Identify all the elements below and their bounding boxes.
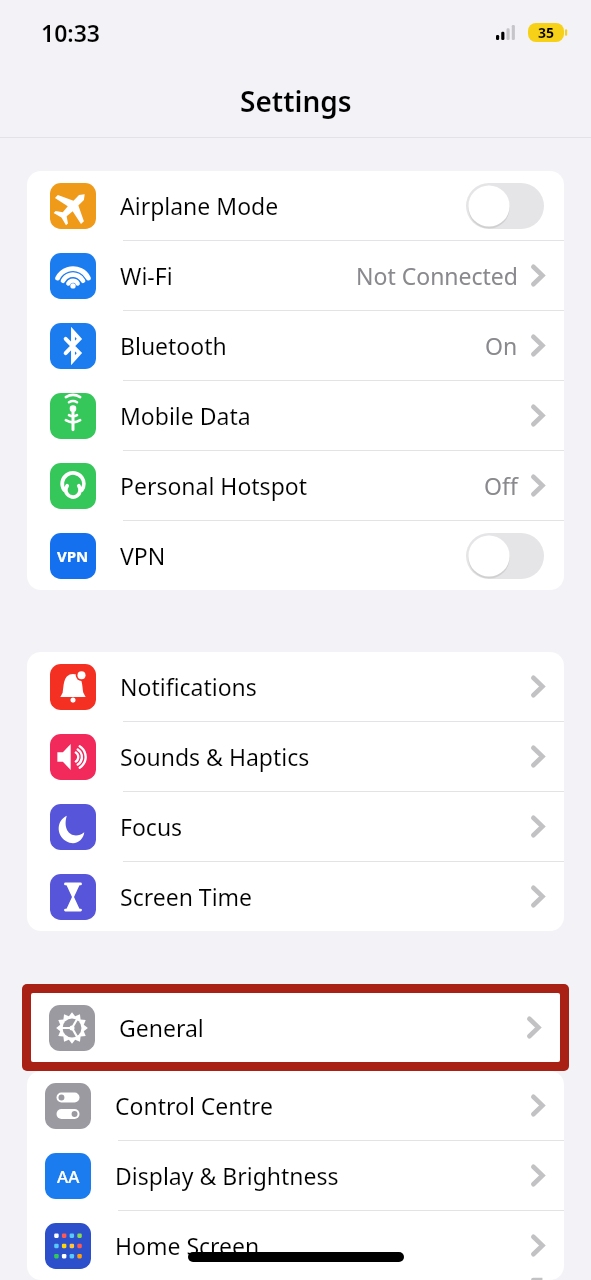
button[interactable]: Airplane Mode	[27, 171, 564, 240]
staticText: On	[485, 330, 518, 361]
staticText: Control Centre	[115, 1090, 531, 1121]
button[interactable]: VPN	[27, 521, 564, 590]
staticText: Mobile Data	[120, 400, 531, 431]
staticText: Display & Brightness	[115, 1160, 531, 1191]
button[interactable]: Mobile Data	[27, 381, 564, 450]
staticText: Sounds & Haptics	[120, 741, 531, 772]
button[interactable]: Toggle VPN	[466, 533, 544, 579]
button[interactable]: Toggle Airplane Mode	[466, 183, 544, 229]
button[interactable]: Focus	[27, 792, 564, 861]
staticText: 10:33	[41, 17, 100, 48]
staticText: VPN	[120, 540, 466, 571]
staticText: Airplane Mode	[120, 190, 466, 221]
staticText: General	[119, 1012, 527, 1043]
button[interactable]: Home Screen	[27, 1211, 564, 1280]
button[interactable]: Sounds & Haptics	[27, 722, 564, 791]
staticText: Focus	[120, 811, 531, 842]
staticText: 35	[538, 23, 555, 42]
button[interactable]: Screen Time	[27, 862, 564, 931]
staticText: Personal Hotspot	[120, 470, 484, 501]
button[interactable]: General	[31, 993, 560, 1062]
staticText: VPN	[57, 546, 89, 566]
staticText: Bluetooth	[120, 330, 485, 361]
staticText: Notifications	[120, 671, 531, 702]
staticText: Wi-Fi	[120, 260, 356, 291]
button[interactable]: Personal Hotspot	[27, 451, 564, 520]
staticText: Settings	[240, 82, 352, 120]
button[interactable]: AA	[27, 1141, 564, 1210]
button[interactable]: Bluetooth	[27, 311, 564, 380]
button[interactable]: Control Centre	[27, 1071, 564, 1140]
staticText: Not Connected	[356, 260, 518, 291]
staticText: Screen Time	[120, 881, 531, 912]
staticText: AA	[57, 1165, 80, 1188]
button[interactable]: Notifications	[27, 652, 564, 721]
staticText: Home Screen	[115, 1230, 531, 1261]
button[interactable]: Wi-Fi	[27, 241, 564, 310]
staticText: Off	[484, 470, 518, 501]
